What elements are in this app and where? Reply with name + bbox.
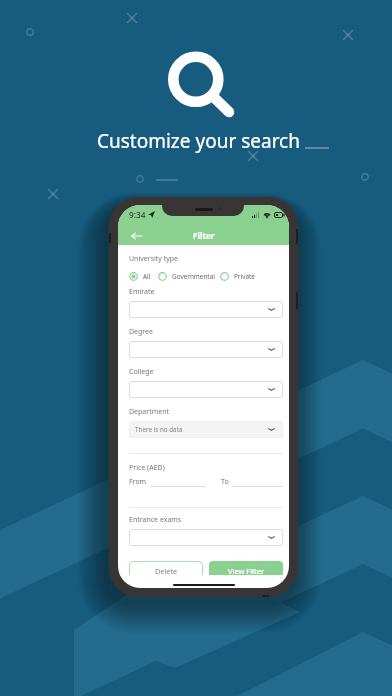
button[interactable] bbox=[129, 301, 283, 318]
staticText: Governmental bbox=[172, 272, 215, 281]
button[interactable]: View Filter bbox=[209, 561, 283, 575]
staticText: All bbox=[143, 272, 151, 281]
button[interactable]: Governmental bbox=[158, 272, 215, 281]
staticText: View Filter bbox=[228, 566, 265, 575]
staticText: Delete bbox=[155, 566, 178, 575]
button[interactable]: There is no data bbox=[129, 421, 283, 438]
staticText: Price (AED) bbox=[129, 463, 165, 473]
staticText: From bbox=[129, 477, 147, 487]
staticText: Filter bbox=[193, 230, 215, 241]
staticText: Degree bbox=[129, 327, 154, 337]
staticText: Customize your search bbox=[97, 128, 300, 154]
staticText: There is no data bbox=[135, 425, 183, 434]
button[interactable] bbox=[129, 341, 283, 358]
button[interactable] bbox=[129, 381, 283, 398]
staticText: Department bbox=[129, 407, 170, 417]
staticText: Private bbox=[234, 272, 255, 281]
button[interactable]: All bbox=[129, 272, 151, 281]
staticText: 9:34 bbox=[129, 209, 146, 220]
button[interactable] bbox=[129, 529, 283, 546]
button[interactable]: Delete bbox=[129, 561, 203, 575]
staticText: Entrance exams bbox=[129, 515, 182, 525]
staticText: University type bbox=[129, 254, 179, 264]
button[interactable]: Private bbox=[220, 272, 255, 281]
staticText: To bbox=[221, 477, 229, 487]
staticText: Emirate bbox=[129, 287, 155, 297]
staticText: College bbox=[129, 367, 154, 377]
button[interactable]: Back bbox=[125, 226, 147, 245]
